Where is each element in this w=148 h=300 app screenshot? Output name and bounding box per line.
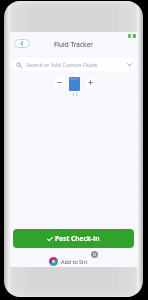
button[interactable]: Decrease <box>54 77 65 88</box>
staticText: Add to Siri <box>61 258 88 265</box>
button[interactable]: Post Check-in <box>13 229 134 248</box>
staticText: Search or Add Custom Fluids <box>26 61 98 68</box>
button[interactable]: Back <box>14 39 30 48</box>
staticText: Fluid Tracker <box>54 40 94 49</box>
button[interactable]: Search or Add Custom Fluids <box>12 58 136 71</box>
staticText: 1 L <box>67 92 83 98</box>
other: Signal <box>128 34 136 38</box>
button[interactable]: Add to Siri <box>49 256 105 266</box>
button[interactable]: Increase <box>85 77 96 88</box>
button[interactable]: Dismiss <box>91 251 98 258</box>
staticText: Post Check-in <box>55 234 100 243</box>
